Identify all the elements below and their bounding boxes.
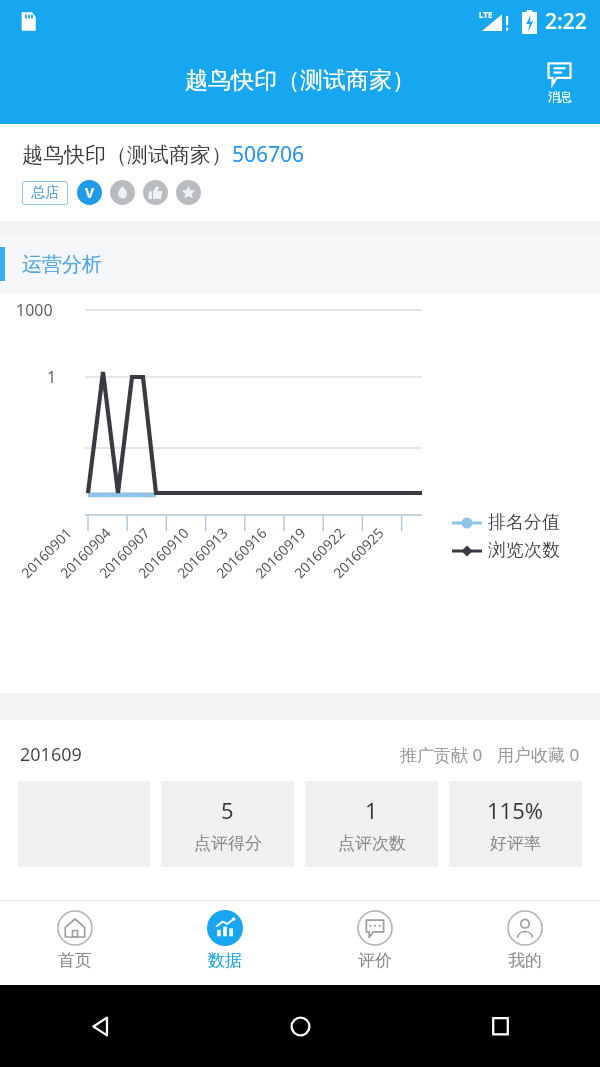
staticText: 1 [365, 795, 378, 825]
staticText: V [85, 183, 95, 202]
staticText: 20160904 [56, 523, 115, 582]
staticText: 总店 [31, 184, 59, 202]
button[interactable]: 数据 [150, 901, 300, 985]
staticText: 点评得分 [194, 833, 262, 854]
staticText: 浏览次数 [488, 539, 560, 562]
staticText: 2:22 [545, 7, 587, 36]
staticText: 201609 [20, 742, 82, 767]
button[interactable]: 115% [449, 781, 582, 867]
staticText: 20160907 [95, 523, 154, 582]
button[interactable]: 首页 [0, 901, 150, 985]
button[interactable]: 总店 [22, 181, 68, 205]
staticText: 506706 [232, 140, 305, 169]
button[interactable]: 好评标识 [143, 180, 168, 205]
staticText: 排名分值 [488, 511, 560, 534]
staticText: 20160922 [290, 523, 349, 582]
button[interactable]: 认证商家 [77, 180, 102, 205]
staticText: 越鸟快印（测试商家） [185, 66, 415, 95]
staticText: 我的 [508, 950, 542, 971]
staticText: 推广贡献 0 [400, 743, 483, 766]
button[interactable]: 消息 [543, 58, 576, 108]
button[interactable]: 火热标识 [110, 180, 135, 205]
button[interactable]: 1 [305, 781, 438, 867]
staticText: 运营分析 [22, 252, 102, 277]
staticText: 点评次数 [338, 833, 406, 854]
staticText: 评价 [358, 950, 392, 971]
staticText: 用户收藏 0 [497, 743, 580, 766]
staticText: 20160916 [212, 523, 271, 582]
staticText: 20160919 [251, 523, 310, 582]
staticText: 越鸟快印（测试商家） [22, 142, 232, 168]
button[interactable]: Recents [487, 1013, 514, 1040]
button[interactable]: 评价 [300, 901, 450, 985]
staticText: 数据 [208, 950, 242, 971]
staticText: 20160901 [17, 523, 76, 582]
button[interactable]: 星级标识 [176, 180, 201, 205]
staticText: LTE [479, 9, 493, 20]
staticText: 5 [221, 795, 234, 825]
button[interactable]: 我的 [450, 901, 600, 985]
staticText: 20160925 [329, 523, 388, 582]
button[interactable]: 5 [161, 781, 294, 867]
staticText: 20160913 [173, 523, 232, 582]
staticText: 1 [47, 366, 57, 388]
staticText: 消息 [548, 89, 572, 104]
staticText: 115% [487, 795, 544, 825]
staticText: 首页 [58, 950, 92, 971]
staticText: 20160910 [134, 523, 193, 582]
button[interactable]: Back [87, 1013, 114, 1040]
button[interactable]: Home [287, 1013, 314, 1040]
staticText: 好评率 [490, 833, 541, 854]
staticText: 1000 [16, 299, 53, 321]
